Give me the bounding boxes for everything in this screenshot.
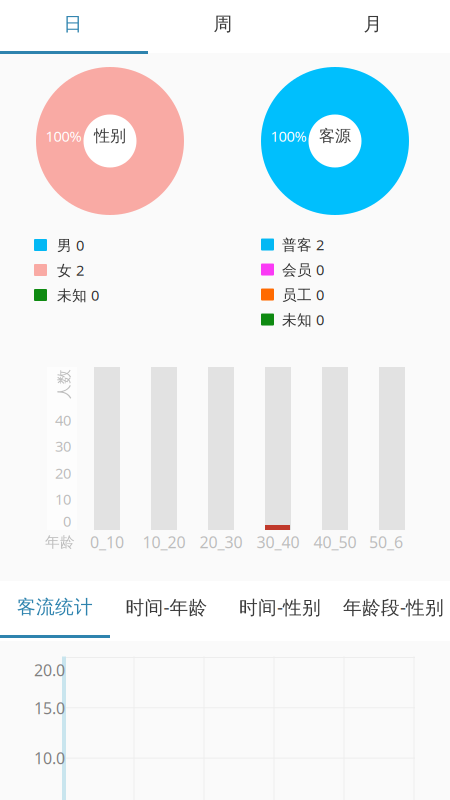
staticText: 40	[55, 410, 71, 430]
staticText: 20	[55, 463, 71, 483]
staticText: 性别	[94, 126, 126, 146]
staticText: 10_20	[142, 531, 185, 553]
staticText: 客源	[319, 126, 351, 146]
staticText: 会员 0	[282, 260, 324, 279]
staticText: 月	[363, 12, 382, 35]
staticText: 普客 2	[282, 235, 324, 254]
staticText: 30	[55, 436, 71, 456]
staticText: 时间-年龄	[125, 595, 207, 619]
staticText: 20.0	[34, 659, 65, 681]
staticText: 员工 0	[282, 285, 324, 304]
staticText: 10	[55, 489, 71, 509]
button[interactable]: 月	[300, 0, 450, 53]
staticText: 100%	[270, 126, 306, 146]
button[interactable]: 时间-性别	[223, 581, 337, 641]
staticText: 20_30	[199, 531, 242, 553]
staticText: 未知 0	[57, 285, 99, 305]
staticText: 人数	[49, 375, 79, 393]
staticText: 0_10	[90, 531, 124, 553]
staticText: 年龄	[45, 533, 75, 551]
staticText: 日	[63, 12, 82, 35]
staticText: 40_50	[313, 531, 356, 553]
button[interactable]: 日	[0, 0, 150, 53]
staticText: 10.0	[34, 747, 65, 769]
staticText: 时间-性别	[239, 595, 321, 619]
staticText: 15.0	[34, 697, 65, 719]
staticText: 女 2	[57, 260, 84, 280]
staticText: 30_40	[256, 531, 299, 553]
button[interactable]: 周	[150, 0, 300, 53]
staticText: 男 0	[57, 235, 84, 255]
button[interactable]: 年龄段-性别	[337, 581, 450, 641]
staticText: 客流统计	[17, 595, 93, 618]
staticText: 0	[63, 511, 71, 531]
staticText: 周	[213, 12, 232, 35]
staticText: 年龄段-性别	[343, 595, 444, 619]
staticText: 100%	[45, 126, 81, 146]
staticText: 50_6	[369, 531, 403, 553]
button[interactable]: 客流统计	[0, 581, 110, 641]
staticText: 未知 0	[282, 310, 324, 329]
button[interactable]: 时间-年龄	[110, 581, 223, 641]
